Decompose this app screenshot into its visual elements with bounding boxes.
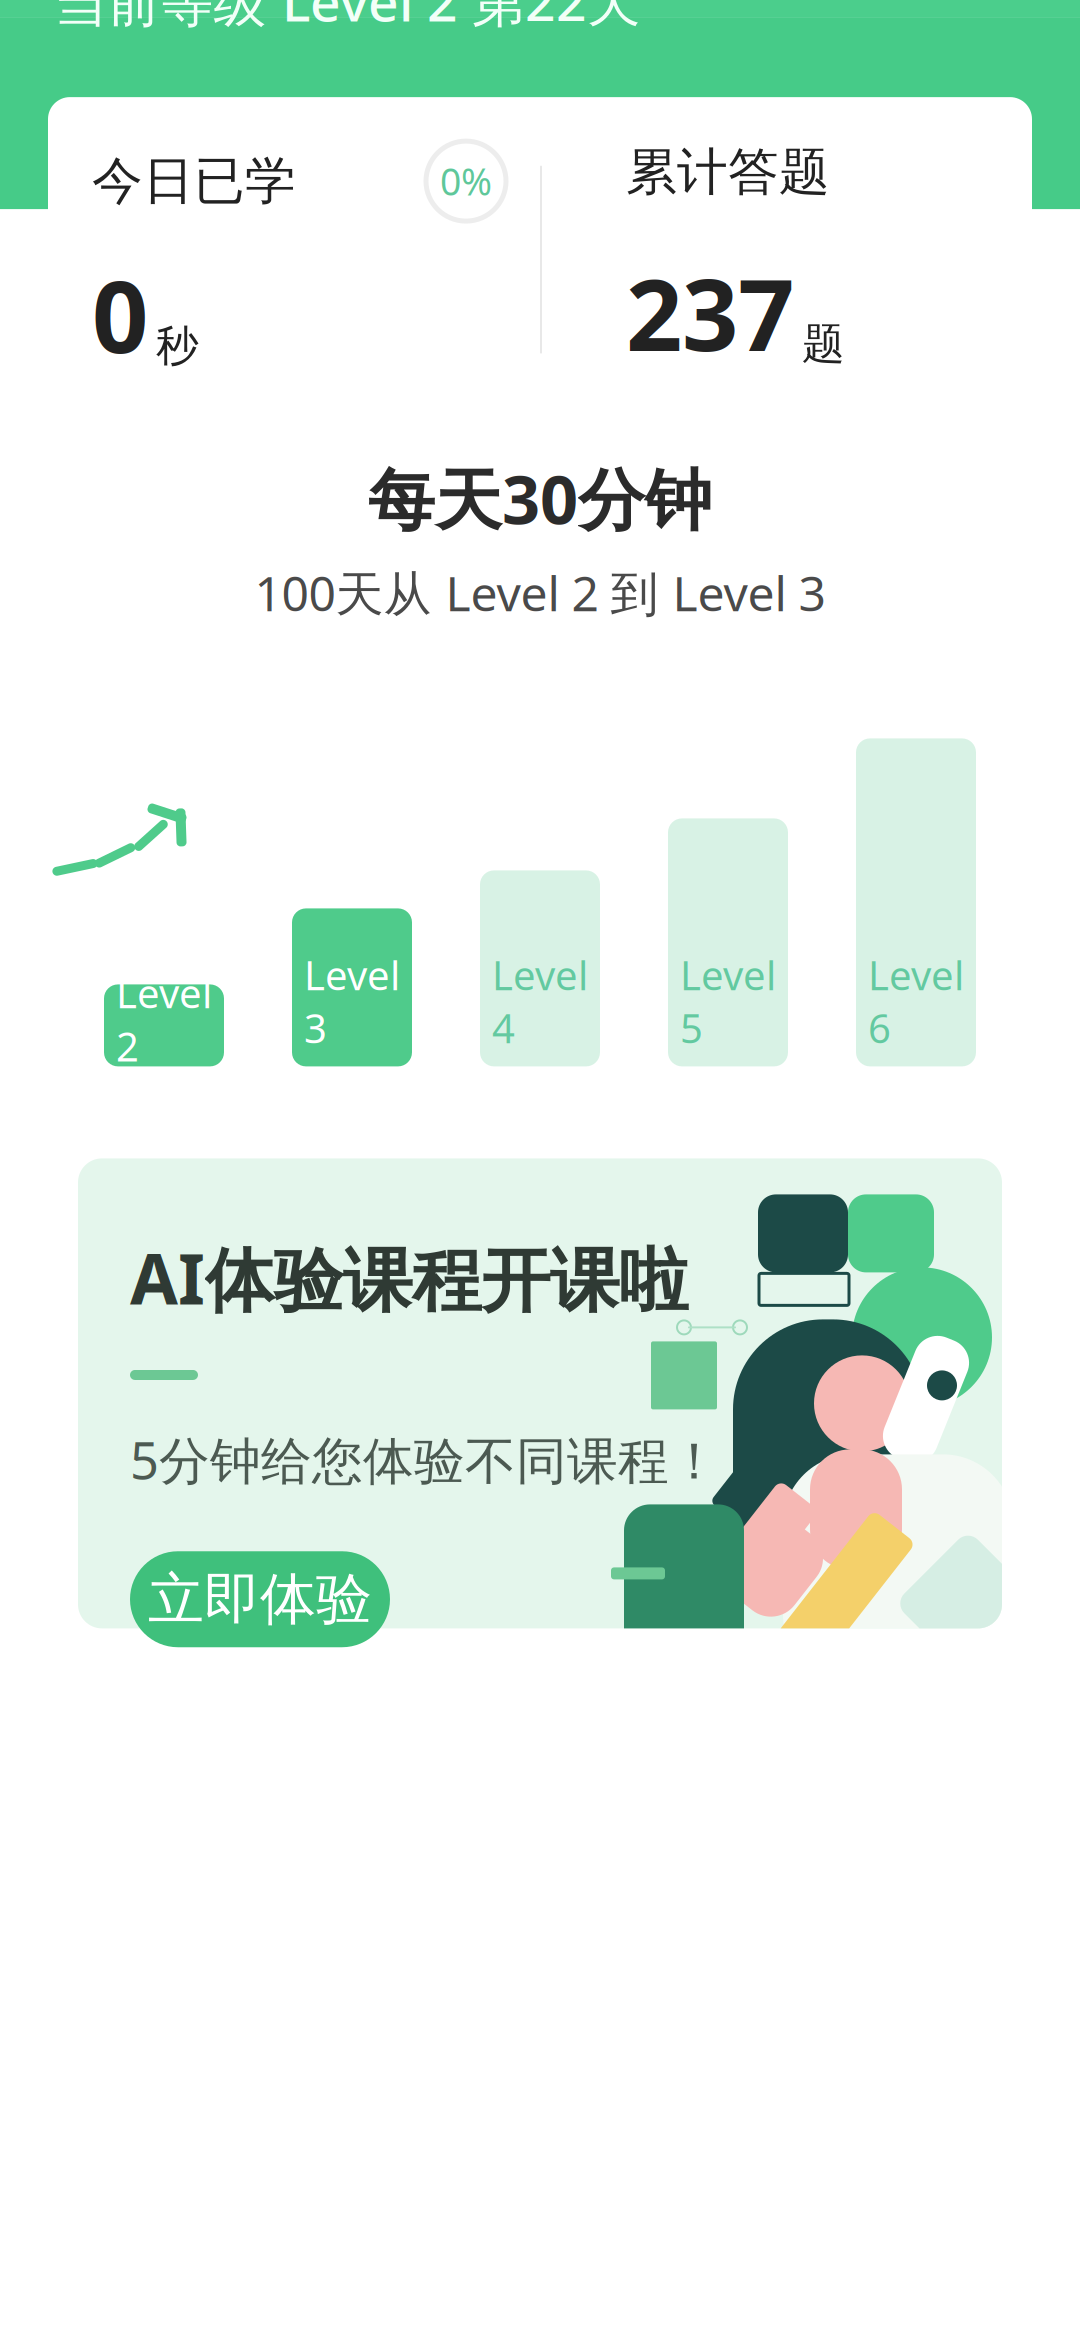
staticText: AI体验课程开课啦 xyxy=(130,1231,688,1324)
staticText: 立即体验 xyxy=(148,1565,372,1634)
staticText: Level 2 xyxy=(116,966,212,1072)
staticText: 237 xyxy=(626,247,794,378)
staticText: 今日已学 xyxy=(92,150,296,212)
staticText: 5分钟给您体验不同课程！ xyxy=(130,1426,720,1493)
staticText: 题 xyxy=(802,318,845,370)
staticText: Level 6 xyxy=(868,948,964,1054)
staticText: Level 3 xyxy=(304,948,400,1054)
staticText: 秒 xyxy=(156,320,199,372)
button[interactable]: AI体验课程开课啦 xyxy=(78,1158,1002,1628)
staticText: 当前等级 Level 2 第22天 xyxy=(54,0,640,36)
staticText: 0 xyxy=(92,249,148,380)
staticText: 每天30分钟 xyxy=(368,454,712,543)
staticText: 0% xyxy=(440,156,492,206)
staticText: Level 4 xyxy=(492,948,588,1054)
staticText: 100天从 Level 2 到 Level 3 xyxy=(254,561,825,624)
staticText: Level 5 xyxy=(680,948,776,1054)
button[interactable]: 立即体验 xyxy=(130,1551,390,1647)
staticText: 累计答题 xyxy=(626,141,830,203)
